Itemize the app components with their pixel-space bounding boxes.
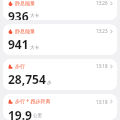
button[interactable]: 静息能量 — [3, 0, 117, 20]
staticText: 28,754 — [8, 71, 46, 87]
other: Show details — [110, 1, 113, 6]
staticText: 静息能量 — [15, 0, 35, 6]
staticText: 步行 + 跑步距离 — [15, 98, 51, 105]
staticText: 步 — [47, 80, 52, 86]
button[interactable]: 步行 — [3, 59, 117, 90]
staticText: 13:26 — [96, 0, 108, 6]
staticText: 13:18 — [96, 99, 108, 105]
staticText: 13:18 — [96, 63, 108, 69]
staticText: 941 — [8, 36, 29, 52]
button[interactable]: 步行 + 跑步距离 — [3, 94, 117, 120]
staticText: 大卡 — [30, 45, 39, 51]
staticText: 13:23 — [96, 28, 108, 34]
staticText: 步行 — [15, 63, 25, 69]
other: Show details — [110, 99, 113, 104]
other: Show details — [110, 64, 113, 69]
button[interactable]: 静息能量 — [3, 24, 117, 55]
staticText: 大卡 — [30, 13, 39, 19]
staticText: 静息能量 — [15, 28, 35, 34]
other: Show details — [110, 29, 113, 34]
staticText: 936 — [8, 8, 29, 20]
staticText: 19.9 — [8, 107, 32, 120]
staticText: 公里 — [33, 113, 42, 119]
